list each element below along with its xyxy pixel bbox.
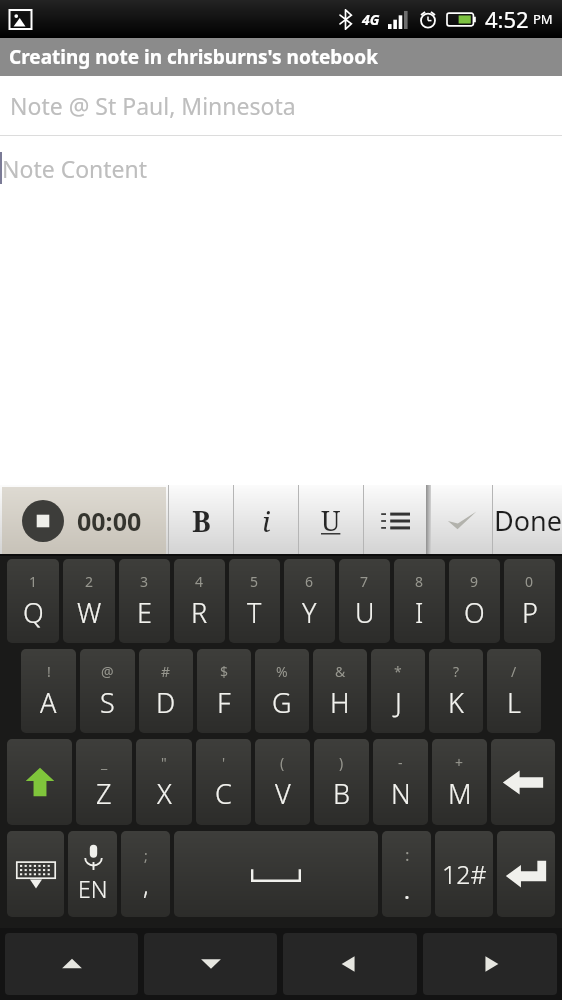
staticText: T <box>247 594 262 631</box>
staticText: 3 <box>140 572 149 591</box>
button[interactable]: / <box>487 649 541 733</box>
staticText: . <box>404 875 410 905</box>
button[interactable]: Confirm <box>431 485 492 556</box>
staticText: 2 <box>85 572 94 591</box>
button[interactable]: & <box>313 649 367 733</box>
button[interactable]: Hide keyboard <box>7 831 64 917</box>
staticText: W <box>77 594 102 631</box>
staticText: 5 <box>250 572 259 591</box>
button[interactable]: Creating note in chrisburns's notebook <box>0 38 562 76</box>
staticText: F <box>217 684 231 721</box>
staticText: I <box>415 594 424 631</box>
button[interactable]: Done <box>493 485 562 556</box>
button[interactable]: * <box>371 649 425 733</box>
staticText: X <box>157 775 172 812</box>
staticText: " <box>161 753 167 772</box>
button[interactable]: _ <box>76 739 132 825</box>
staticText: 0 <box>525 572 534 591</box>
staticText: O <box>464 594 485 631</box>
button[interactable]: 1 <box>7 559 59 643</box>
staticText: 6 <box>305 572 314 591</box>
button[interactable]: 0 <box>504 559 555 643</box>
staticText: 1 <box>29 572 38 591</box>
button[interactable]: ! <box>21 649 76 733</box>
button[interactable]: ; <box>121 831 170 917</box>
button[interactable]: % <box>255 649 309 733</box>
staticText: L <box>507 684 521 721</box>
button[interactable]: Next <box>423 933 557 995</box>
button[interactable]: : <box>382 831 431 917</box>
staticText: B <box>333 775 351 812</box>
button[interactable]: i <box>234 485 298 556</box>
button[interactable]: 12# <box>435 831 493 917</box>
button[interactable]: 9 <box>449 559 500 643</box>
staticText: J <box>395 684 402 721</box>
button[interactable]: 2 <box>63 559 115 643</box>
button[interactable]: " <box>136 739 192 825</box>
staticText: Note @ St Paul, Minnesota <box>10 90 296 121</box>
staticText: H <box>330 684 350 721</box>
button[interactable]: Numbered list <box>364 485 426 556</box>
staticText: # <box>161 662 171 681</box>
other: Stop recording <box>22 500 64 542</box>
other: Shift <box>23 765 57 799</box>
staticText: EN <box>78 873 108 904</box>
other: Space <box>251 867 301 882</box>
staticText: % <box>276 662 288 681</box>
button[interactable]: 7 <box>339 559 390 643</box>
staticText: S <box>100 684 115 721</box>
staticText: 4G <box>362 10 380 29</box>
other: Voice input <box>82 844 105 873</box>
button[interactable]: # <box>139 649 193 733</box>
staticText: M <box>448 775 472 812</box>
staticText: B <box>192 502 211 540</box>
other: Backspace <box>502 769 544 796</box>
button[interactable]: B <box>169 485 233 556</box>
staticText: ; <box>144 846 148 865</box>
button[interactable]: ) <box>314 739 369 825</box>
button[interactable]: + <box>432 739 487 825</box>
button[interactable]: Stop recording <box>2 487 166 554</box>
staticText: / <box>511 662 517 681</box>
staticText: Creating note in chrisburns's notebook <box>9 44 378 70</box>
button[interactable]: Previous <box>283 933 417 995</box>
staticText: ? <box>453 662 460 681</box>
button[interactable]: Space <box>174 831 378 917</box>
button[interactable]: U <box>299 485 363 556</box>
button[interactable]: @ <box>80 649 135 733</box>
staticText: + <box>455 753 464 772</box>
button[interactable]: Gallery <box>8 7 33 32</box>
staticText: Y <box>302 594 317 631</box>
staticText: _ <box>101 753 108 772</box>
button[interactable]: Scroll up <box>5 933 138 995</box>
staticText: 4 <box>195 572 204 591</box>
staticText: ) <box>339 753 344 772</box>
button[interactable]: Shift <box>7 739 72 825</box>
button[interactable]: Backspace <box>491 739 555 825</box>
staticText: 12# <box>442 857 487 891</box>
staticText: , <box>143 868 149 902</box>
button[interactable]: 3 <box>119 559 170 643</box>
button[interactable]: 6 <box>284 559 335 643</box>
button[interactable]: Note @ St Paul, Minnesota <box>0 76 562 135</box>
button[interactable]: Voice input <box>68 831 117 917</box>
other: Enter <box>505 860 547 889</box>
button[interactable]: ' <box>196 739 251 825</box>
button[interactable]: Note Content <box>0 136 562 199</box>
staticText: U <box>321 502 341 539</box>
staticText: E <box>137 594 152 631</box>
staticText: R <box>191 594 208 631</box>
button[interactable]: Enter <box>497 831 555 917</box>
button[interactable]: 8 <box>394 559 445 643</box>
staticText: P <box>522 594 538 631</box>
button[interactable]: 5 <box>229 559 280 643</box>
staticText: ( <box>280 753 285 772</box>
button[interactable]: Scroll down <box>144 933 277 995</box>
button[interactable]: ( <box>255 739 310 825</box>
button[interactable]: - <box>373 739 428 825</box>
button[interactable]: ? <box>429 649 483 733</box>
button[interactable]: $ <box>197 649 251 733</box>
staticText: ' <box>222 753 226 772</box>
staticText: : <box>405 843 410 866</box>
button[interactable]: 4 <box>174 559 225 643</box>
